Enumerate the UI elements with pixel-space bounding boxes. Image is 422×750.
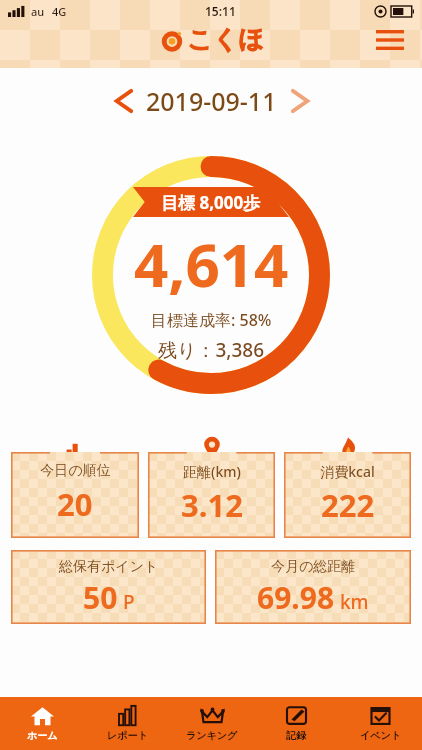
- staticText: こくほ: [187, 24, 264, 55]
- button[interactable]: 総保有ポイント: [11, 550, 206, 624]
- staticText: イベント: [360, 729, 401, 742]
- staticText: 15:11: [205, 3, 236, 19]
- staticText: 今月の総距離: [271, 558, 356, 576]
- staticText: 4,614: [134, 223, 289, 305]
- staticText: 4G: [52, 4, 67, 19]
- staticText: P: [118, 589, 135, 615]
- staticText: 目標達成率: 58%: [151, 309, 272, 331]
- button[interactable]: イベント: [338, 697, 422, 750]
- staticText: 記録: [286, 729, 306, 742]
- button[interactable]: 消費kcal: [284, 434, 411, 538]
- button[interactable]: ホーム: [0, 697, 85, 750]
- button[interactable]: 記録: [254, 697, 338, 750]
- staticText: レポート: [107, 729, 148, 742]
- staticText: km: [335, 589, 369, 615]
- button[interactable]: 距離(km): [148, 434, 275, 538]
- button[interactable]: Menu: [370, 20, 410, 60]
- staticText: 距離(km): [183, 462, 241, 481]
- staticText: ホーム: [27, 729, 58, 742]
- button[interactable]: Next day: [281, 82, 319, 120]
- staticText: 222: [321, 484, 375, 526]
- staticText: 残り：3,386: [158, 337, 265, 363]
- staticText: 2019-09-11: [146, 84, 277, 118]
- staticText: 20: [57, 483, 93, 525]
- button[interactable]: レポート: [85, 697, 170, 750]
- staticText: 目標 8,000歩: [161, 191, 261, 214]
- staticText: 消費kcal: [320, 462, 375, 481]
- staticText: 総保有ポイント: [59, 558, 159, 576]
- button[interactable]: 今月の総距離: [215, 550, 411, 624]
- staticText: 50: [83, 577, 118, 618]
- button[interactable]: Previous day: [104, 82, 142, 120]
- staticText: ランキング: [186, 729, 238, 742]
- staticText: au: [31, 4, 45, 19]
- button[interactable]: ランキング: [170, 697, 254, 750]
- staticText: 3.12: [181, 484, 243, 526]
- staticText: 69.98: [257, 577, 335, 618]
- button[interactable]: 今日の順位: [11, 434, 139, 538]
- staticText: 今日の順位: [40, 462, 111, 480]
